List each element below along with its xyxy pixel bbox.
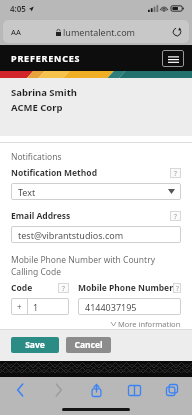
staticText: Save xyxy=(25,339,45,351)
staticText: Code xyxy=(11,282,33,294)
button[interactable]: Help xyxy=(170,168,181,178)
button[interactable]: AA xyxy=(3,20,189,43)
staticText: ? xyxy=(62,284,65,293)
button[interactable]: Back xyxy=(9,379,31,401)
staticText: Cancel xyxy=(74,339,103,351)
button[interactable]: More information xyxy=(111,319,181,329)
staticText: ACME Corp xyxy=(11,101,63,114)
staticText: 4144037195 xyxy=(85,301,137,313)
button[interactable]: Bookmarks xyxy=(123,379,145,401)
button[interactable]: Cancel xyxy=(66,337,111,353)
staticText: Sabrina Smith xyxy=(11,86,77,99)
button[interactable]: Tabs xyxy=(161,379,183,401)
staticText: ? xyxy=(174,212,177,221)
staticText: Notifications xyxy=(11,151,62,163)
staticText: Mobile Phone Number with Country Calling… xyxy=(11,254,181,278)
button[interactable]: Save xyxy=(11,337,59,353)
staticText: lumentalent.com xyxy=(63,26,136,38)
staticText: PREFERENCES xyxy=(11,52,81,64)
button[interactable]: test@vibrantstudios.com xyxy=(11,226,181,243)
button[interactable]: Forward xyxy=(47,379,69,401)
staticText: More information xyxy=(118,319,181,329)
staticText: Text xyxy=(18,186,36,198)
staticText: + xyxy=(17,301,22,312)
staticText: ? xyxy=(176,284,179,293)
staticText: Email Address xyxy=(11,210,71,222)
button[interactable]: Help xyxy=(173,283,181,293)
staticText: test@vibrantstudios.com xyxy=(18,229,124,241)
button[interactable]: Menu xyxy=(162,50,184,67)
staticText: Notification Method xyxy=(11,167,98,179)
button[interactable]: + xyxy=(11,298,69,315)
staticText: ? xyxy=(174,169,177,178)
button[interactable]: Share xyxy=(85,379,107,401)
button[interactable]: Help xyxy=(170,211,181,221)
button[interactable]: 4144037195 xyxy=(78,298,181,315)
staticText: Mobile Phone Number xyxy=(78,282,173,294)
button[interactable]: Reload xyxy=(172,27,182,37)
staticText: 1 xyxy=(33,301,39,313)
button[interactable]: Help xyxy=(58,283,69,293)
staticText: 4:05 xyxy=(10,3,26,14)
staticText: AA xyxy=(11,27,21,37)
button[interactable]: Text xyxy=(11,183,181,200)
